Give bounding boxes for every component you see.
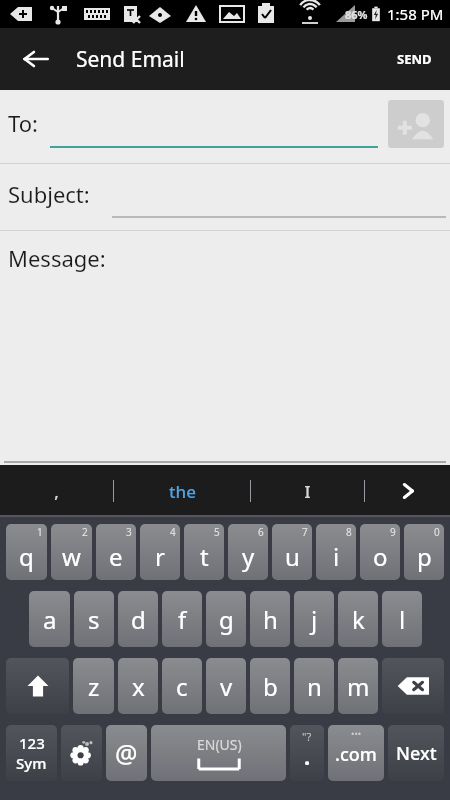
button[interactable]: x <box>118 658 158 714</box>
staticText: 86% <box>345 7 368 22</box>
button[interactable]: At sign <box>106 725 147 781</box>
button[interactable]: 5 <box>184 524 224 580</box>
button[interactable]: a <box>29 591 70 647</box>
staticText: .com <box>335 742 377 767</box>
staticText: the <box>169 480 196 503</box>
button[interactable]: Dot com <box>328 725 384 781</box>
button[interactable]: 2 <box>51 524 92 580</box>
staticText: Message: <box>8 243 106 273</box>
button[interactable] <box>112 173 446 221</box>
staticText: SEND <box>397 50 432 68</box>
staticText: 8 <box>346 525 352 539</box>
staticText: r <box>155 540 165 573</box>
button[interactable]: f <box>162 591 202 647</box>
staticText: e <box>109 540 123 573</box>
button[interactable]: SEND <box>385 36 444 82</box>
button[interactable]: c <box>162 658 202 714</box>
button[interactable]: I <box>251 465 364 517</box>
staticText: g <box>219 603 234 636</box>
staticText: t <box>200 540 209 573</box>
staticText: j <box>311 603 318 636</box>
staticText: f <box>178 603 187 636</box>
staticText: h <box>263 603 278 636</box>
staticText: @ <box>115 736 138 770</box>
staticText: d <box>131 603 146 636</box>
button[interactable]: 6 <box>228 524 268 580</box>
staticText: 2 <box>82 525 88 539</box>
staticText: Next <box>396 741 437 766</box>
staticText: Sym <box>16 753 47 773</box>
staticText: p <box>417 540 432 573</box>
button[interactable]: the <box>114 465 250 517</box>
staticText: 9 <box>390 525 396 539</box>
button[interactable]: b <box>250 658 290 714</box>
button[interactable]: 7 <box>272 524 312 580</box>
button[interactable]: 0 <box>404 524 444 580</box>
staticText: u <box>285 540 300 573</box>
staticText: l <box>399 603 406 636</box>
button[interactable]: Next <box>388 725 444 781</box>
staticText: 4 <box>170 525 176 539</box>
staticText: b <box>263 670 278 703</box>
staticText: . <box>304 741 311 771</box>
staticText: To: <box>8 108 38 138</box>
staticText: 0 <box>434 525 440 539</box>
button[interactable]: z <box>73 658 114 714</box>
staticText: "? <box>302 729 312 744</box>
staticText: m <box>347 670 370 703</box>
staticText: EN(US) <box>197 735 242 754</box>
button[interactable]: 3 <box>96 524 136 580</box>
staticText: Send Email <box>76 45 185 74</box>
staticText: 1:58 PM <box>387 4 444 24</box>
button[interactable]: j <box>294 591 334 647</box>
staticText: x <box>132 670 145 703</box>
button[interactable]: 4 <box>140 524 180 580</box>
staticText: 123 <box>19 733 45 753</box>
staticText: I <box>304 480 311 503</box>
staticText: Subject: <box>8 179 90 209</box>
staticText: , <box>54 480 59 503</box>
button[interactable]: , <box>0 465 113 517</box>
staticText: 6 <box>258 525 264 539</box>
button[interactable]: s <box>74 591 114 647</box>
staticText: ••• <box>351 727 362 739</box>
button[interactable]: m <box>338 658 378 714</box>
staticText: k <box>352 603 365 636</box>
button[interactable]: Backspace <box>382 658 444 714</box>
button[interactable]: 8 <box>316 524 356 580</box>
staticText: a <box>43 603 57 636</box>
button[interactable]: n <box>294 658 334 714</box>
staticText: 3 <box>126 525 132 539</box>
button[interactable]: Space <box>151 725 286 781</box>
staticText: z <box>88 670 100 703</box>
staticText: i <box>333 540 340 573</box>
button[interactable]: 9 <box>360 524 400 580</box>
button[interactable]: d <box>118 591 158 647</box>
staticText: s <box>88 603 100 636</box>
button[interactable]: h <box>250 591 290 647</box>
button[interactable]: Settings <box>61 725 102 781</box>
staticText: q <box>19 540 34 573</box>
staticText: v <box>220 670 233 703</box>
button[interactable]: Back <box>14 37 58 81</box>
staticText: w <box>62 540 81 573</box>
button[interactable]: 1 <box>6 524 47 580</box>
button[interactable]: Pick contact <box>388 100 444 148</box>
button[interactable]: g <box>206 591 246 647</box>
button[interactable] <box>50 101 378 153</box>
button[interactable]: k <box>338 591 378 647</box>
button[interactable]: Symbols <box>6 725 57 781</box>
staticText: c <box>176 670 188 703</box>
staticText: n <box>307 670 322 703</box>
staticText: 1 <box>37 525 43 539</box>
button[interactable]: More suggestions <box>365 465 450 517</box>
staticText: 5 <box>214 525 220 539</box>
button[interactable]: Message: <box>0 231 450 465</box>
button[interactable]: Period <box>290 725 324 781</box>
button[interactable]: Shift <box>6 658 69 714</box>
staticText: o <box>373 540 388 573</box>
button[interactable]: l <box>382 591 422 647</box>
button[interactable]: v <box>206 658 246 714</box>
staticText: 7 <box>302 525 308 539</box>
staticText: y <box>242 540 255 573</box>
